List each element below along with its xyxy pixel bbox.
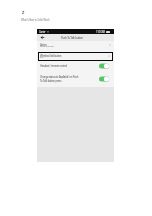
staticText: What's New in Zello Work [21, 18, 50, 22]
staticText: Headset / remote control [40, 64, 97, 68]
staticText: Change status to 'Available' on Push To … [40, 75, 97, 83]
staticText: Push To Talk button [61, 36, 83, 40]
staticText: Off [40, 55, 44, 58]
staticText: Press and hold [40, 44, 54, 47]
button[interactable]: Change status to 'Available' on Push To … [37, 74, 114, 83]
button[interactable]: Action [37, 41, 114, 50]
staticText: Carrier [39, 30, 46, 34]
staticText: Action [40, 43, 47, 47]
staticText: 11:07 AM [96, 30, 105, 34]
button[interactable]: Wireless Edit button [38, 52, 113, 61]
button[interactable]: Back [39, 34, 46, 41]
staticText: Z [22, 10, 25, 15]
staticText: Wireless Edit button [40, 54, 62, 58]
button[interactable]: Headset / remote control [37, 62, 114, 70]
